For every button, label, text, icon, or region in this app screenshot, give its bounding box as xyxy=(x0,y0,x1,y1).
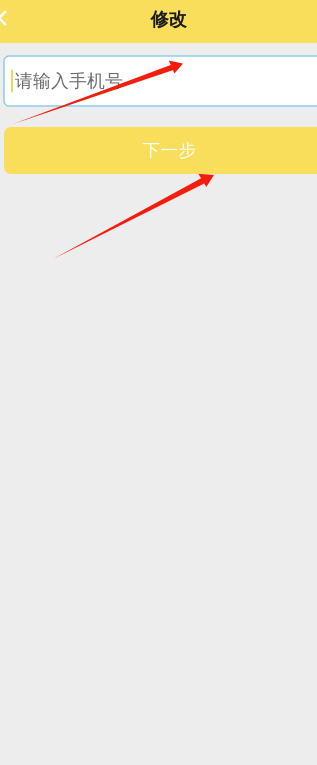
staticText: 下一步 xyxy=(142,139,196,162)
button[interactable]: 下一步 xyxy=(4,127,317,174)
staticText: 修改 xyxy=(150,8,186,31)
button[interactable]: Back xyxy=(0,0,28,43)
staticText: 请输入手机号 xyxy=(15,70,123,92)
